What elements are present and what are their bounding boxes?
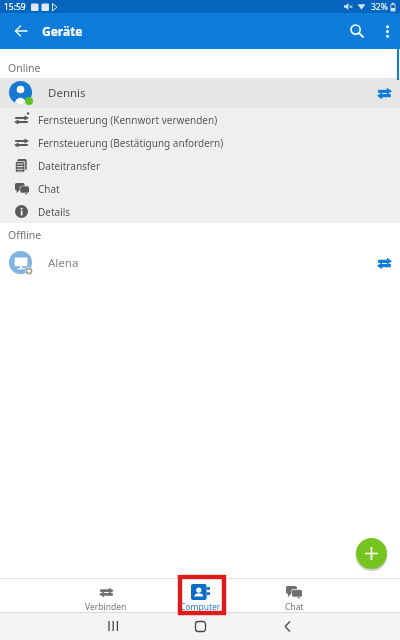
staticText: Alena bbox=[48, 255, 79, 271]
button[interactable] bbox=[0, 13, 42, 49]
button[interactable]: Fernsteuerung (Bestätigung anfordern) bbox=[0, 131, 400, 154]
staticText: Dennis bbox=[48, 85, 86, 101]
staticText: 15:59 bbox=[4, 1, 26, 13]
staticText: Details bbox=[38, 205, 71, 219]
staticText: Chat bbox=[38, 182, 60, 196]
staticText: Offline bbox=[8, 228, 42, 242]
button[interactable]: Dateitransfer bbox=[0, 154, 400, 177]
button[interactable]: Dennis bbox=[0, 78, 400, 108]
staticText: Verbinden bbox=[85, 601, 127, 612]
button[interactable] bbox=[356, 538, 387, 569]
staticText: Geräte bbox=[42, 23, 83, 39]
button[interactable]: Alena bbox=[0, 247, 400, 279]
staticText: Fernsteuerung (Bestätigung anfordern) bbox=[38, 136, 224, 150]
button[interactable]: Details bbox=[0, 200, 400, 223]
button[interactable]: Chat bbox=[247, 578, 341, 612]
button[interactable]: Fernsteuerung (Kennwort verwenden) bbox=[0, 108, 400, 131]
button[interactable] bbox=[70, 612, 157, 640]
button[interactable] bbox=[373, 78, 395, 108]
button[interactable]: Computer bbox=[153, 578, 247, 612]
staticText: Computer bbox=[180, 601, 221, 612]
button[interactable] bbox=[244, 612, 331, 640]
staticText: Online bbox=[8, 61, 41, 75]
button[interactable]: Verbinden bbox=[59, 578, 153, 612]
staticText: Chat bbox=[285, 601, 304, 612]
staticText: 32% bbox=[371, 1, 388, 13]
button[interactable] bbox=[373, 247, 395, 279]
button[interactable]: Chat bbox=[0, 177, 400, 200]
button[interactable] bbox=[340, 13, 374, 49]
staticText: Dateitransfer bbox=[38, 159, 101, 173]
button[interactable] bbox=[374, 13, 400, 49]
staticText: Fernsteuerung (Kennwort verwenden) bbox=[38, 113, 218, 127]
button[interactable] bbox=[157, 612, 244, 640]
